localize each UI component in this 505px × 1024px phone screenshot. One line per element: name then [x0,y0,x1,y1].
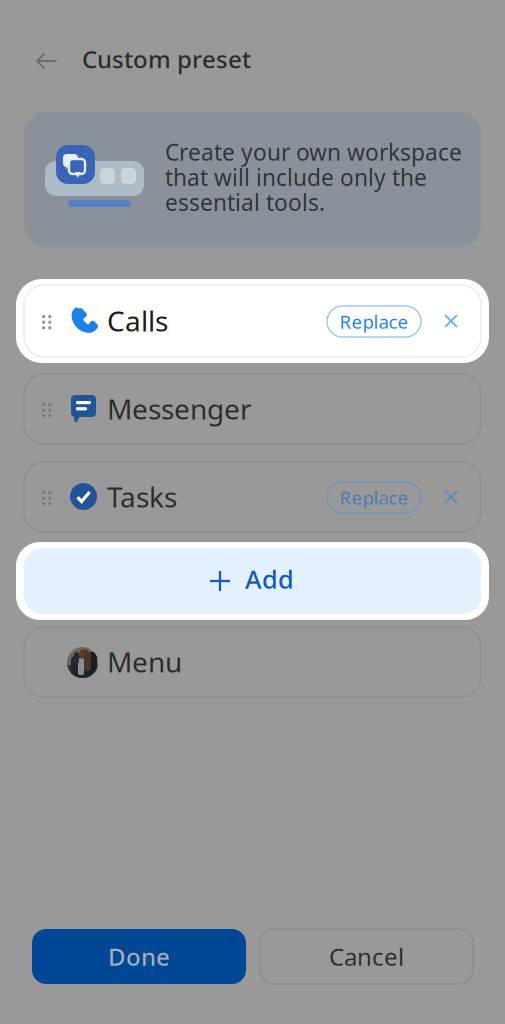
button[interactable]: Menu [24,627,481,697]
button[interactable]: Add [24,548,481,614]
button[interactable]: Cancel [260,929,473,984]
staticText: Tasks [107,478,177,515]
staticText: Menu [107,643,182,680]
staticText: Calls [107,302,168,339]
staticText: Messenger [107,390,252,427]
button[interactable]: Replace [327,306,421,337]
staticText: Create your own workspace that will incl… [165,137,462,217]
staticText: Replace [339,309,408,334]
button[interactable]: Done [32,929,246,984]
button[interactable]: Replace [327,482,421,513]
button[interactable]: Remove Tasks [434,480,468,514]
staticText: Add [245,562,294,596]
staticText: Cancel [329,941,404,972]
staticText: Replace [339,485,408,510]
button[interactable]: Back [25,39,69,83]
button[interactable]: Remove Calls [434,304,468,338]
staticText: Done [108,941,170,972]
staticText: Custom preset [82,43,251,75]
